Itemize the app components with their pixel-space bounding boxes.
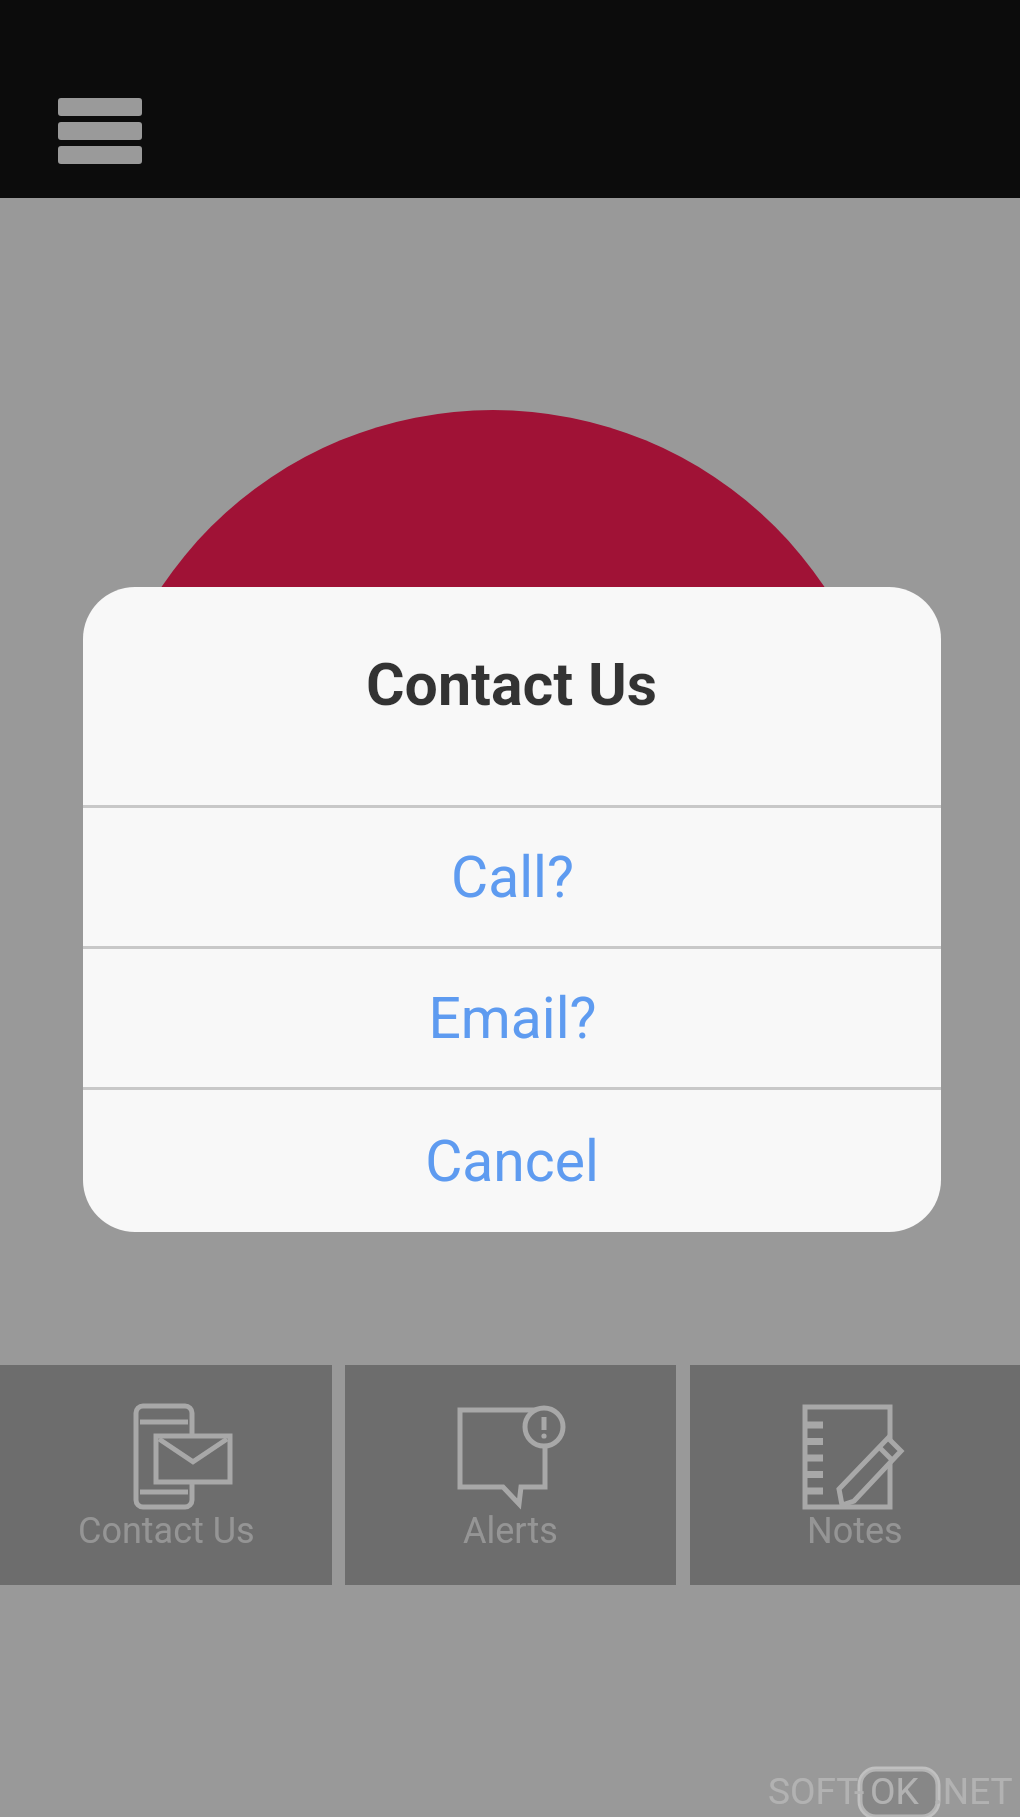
button[interactable]: Contact Us [0,1365,332,1585]
button[interactable]: Cancel [83,1090,941,1232]
button[interactable]: Call? [83,808,941,946]
button[interactable]: Emergency call [94,410,892,1208]
button[interactable]: Email? [83,949,941,1087]
button[interactable]: Notes [690,1365,1020,1585]
staticText: Contact Us [78,1510,255,1552]
staticText: Email? [428,985,597,1052]
staticText: Notes [807,1510,903,1552]
staticText: .NET [933,1770,1013,1813]
button[interactable]: Alerts [345,1365,676,1585]
staticText: Alerts [463,1510,558,1552]
staticText: Call? [451,844,574,911]
staticText: Contact Us [366,650,658,719]
staticText: Cancel [425,1128,599,1195]
button[interactable]: Open navigation menu [52,84,148,164]
staticText: OK [870,1770,919,1813]
staticText: SOFT- [768,1770,865,1813]
